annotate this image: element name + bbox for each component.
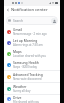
button[interactable]: Maps <box>4 48 60 59</box>
button[interactable]: Advanced Tracking <box>4 71 60 82</box>
staticText: New route discovered <box>13 77 42 81</box>
button[interactable]: Gmail <box>4 26 60 37</box>
staticText: Drive <box>13 95 22 99</box>
staticText: Steps · 8200 today <box>13 65 37 69</box>
button[interactable]: Drive <box>4 95 60 103</box>
button[interactable]: Search <box>6 16 58 25</box>
staticText: Notification center <box>11 7 48 13</box>
button[interactable]: Weather <box>4 83 60 94</box>
staticText: Let up Morning <box>13 38 38 42</box>
button[interactable]: Back <box>5 7 11 13</box>
staticText: Location shared with you <box>13 54 46 58</box>
staticText: Sunny all day <box>13 89 31 93</box>
staticText: Advanced Tracking <box>13 72 43 76</box>
button[interactable]: Let up Morning <box>4 37 60 48</box>
staticText: Weather <box>13 84 27 88</box>
staticText: New message · 2 min ago <box>13 32 47 36</box>
button[interactable]: Account <box>51 18 57 24</box>
staticText: Gmail <box>13 27 23 31</box>
button[interactable]: Samsung Health <box>4 59 60 70</box>
staticText: Samsung Health <box>13 60 39 64</box>
staticText: Alarm rings at 7:30 am <box>13 43 43 47</box>
staticText: File shared with you <box>13 100 40 103</box>
staticText: Search <box>13 19 24 23</box>
staticText: Maps <box>13 49 22 53</box>
